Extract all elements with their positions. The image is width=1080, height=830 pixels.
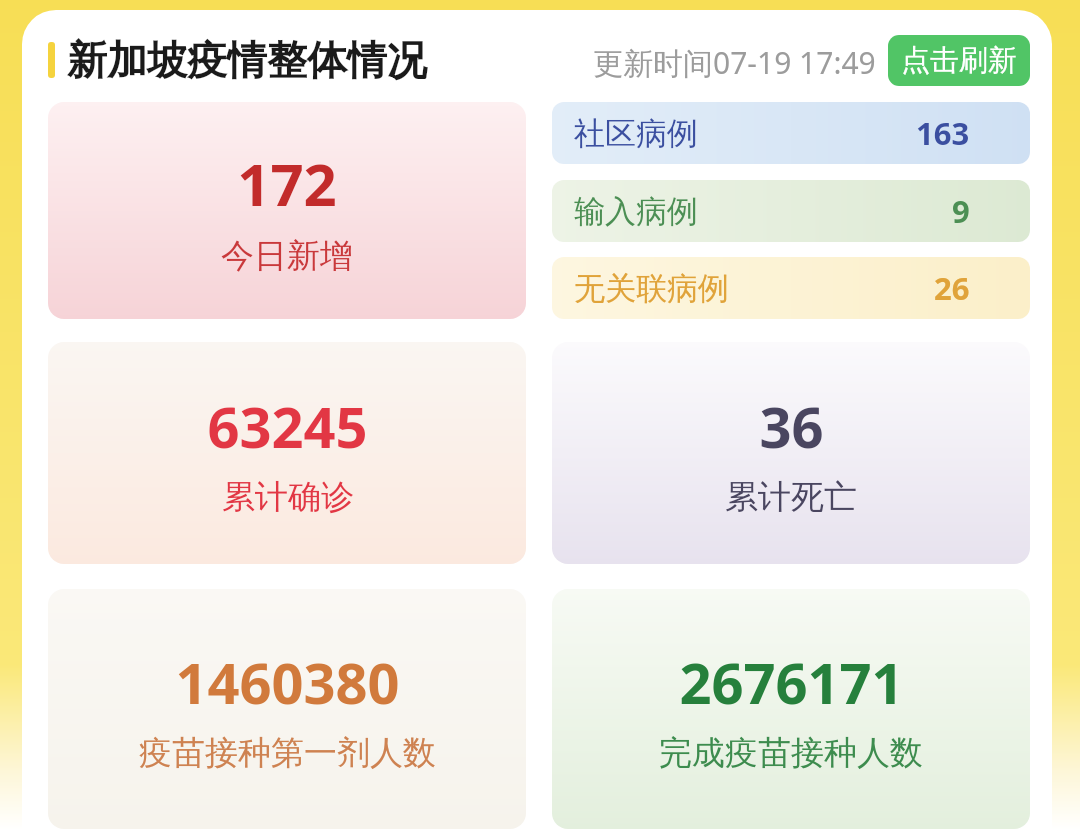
staticText: 1460380 <box>175 644 400 720</box>
staticText: 无关联病例 <box>574 269 729 308</box>
button[interactable]: 36 <box>552 342 1030 564</box>
button[interactable]: 2676171 <box>552 589 1030 829</box>
staticText: 完成疫苗接种人数 <box>659 732 923 774</box>
staticText: 新加坡疫情整体情况 <box>67 35 427 85</box>
button[interactable]: 63245 <box>48 342 526 564</box>
button[interactable]: 无关联病例 <box>552 257 1030 319</box>
button[interactable]: 点击刷新 <box>888 35 1030 86</box>
staticText: 9 <box>952 190 970 232</box>
staticText: 36 <box>759 388 824 464</box>
staticText: 63245 <box>207 388 368 464</box>
button[interactable]: 1460380 <box>48 589 526 829</box>
button[interactable]: 172 <box>48 102 526 319</box>
button[interactable]: 输入病例 <box>552 180 1030 242</box>
staticText: 2676171 <box>679 644 904 720</box>
staticText: 疫苗接种第一剂人数 <box>139 732 436 774</box>
staticText: 社区病例 <box>574 114 698 153</box>
staticText: 172 <box>237 144 337 223</box>
staticText: 累计确诊 <box>222 476 354 518</box>
button[interactable]: 社区病例 <box>552 102 1030 164</box>
staticText: 更新时间07-19 17:49 <box>593 42 876 83</box>
staticText: 输入病例 <box>574 192 698 231</box>
staticText: 累计死亡 <box>725 476 857 518</box>
staticText: 今日新增 <box>221 235 353 277</box>
staticText: 26 <box>934 267 970 309</box>
staticText: 点击刷新 <box>901 42 1017 79</box>
staticText: 163 <box>916 112 970 154</box>
